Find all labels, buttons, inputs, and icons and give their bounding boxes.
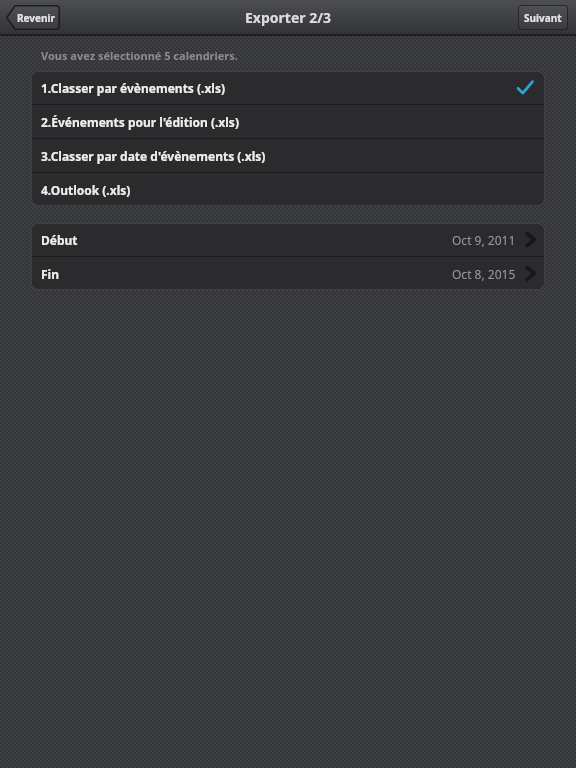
- staticText: 3.Classer par date d'évènements (.xls): [41, 148, 266, 164]
- staticText: Fin: [41, 266, 59, 282]
- button[interactable]: 2.Événements pour l'édition (.xls): [31, 105, 545, 138]
- staticText: Exporter 2/3: [245, 8, 331, 27]
- staticText: Revenir: [17, 11, 55, 25]
- staticText: 4.Outlook (.xls): [41, 182, 131, 198]
- button[interactable]: Fin: [31, 257, 545, 290]
- staticText: Oct 8, 2015: [452, 266, 516, 282]
- button[interactable]: 1.Classer par évènements (.xls): [31, 71, 545, 104]
- button[interactable]: Suivant: [518, 5, 568, 30]
- button[interactable]: Revenir: [6, 5, 60, 30]
- staticText: Suivant: [524, 11, 562, 25]
- button[interactable]: 4.Outlook (.xls): [31, 173, 545, 206]
- staticText: Vous avez sélectionné 5 calendriers.: [41, 48, 238, 63]
- staticText: 1.Classer par évènements (.xls): [41, 80, 226, 96]
- staticText: 2.Événements pour l'édition (.xls): [41, 114, 239, 130]
- button[interactable]: 3.Classer par date d'évènements (.xls): [31, 139, 545, 172]
- staticText: Début: [41, 232, 78, 248]
- staticText: Oct 9, 2011: [452, 232, 516, 248]
- button[interactable]: Début: [31, 223, 545, 256]
